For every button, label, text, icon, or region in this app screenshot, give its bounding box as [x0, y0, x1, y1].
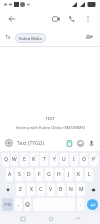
staticText: To	[5, 34, 11, 41]
button[interactable]: D	[25, 168, 33, 181]
button[interactable]: Video call	[49, 12, 63, 26]
button[interactable]: C	[37, 183, 45, 196]
button[interactable]: Recents	[17, 213, 28, 224]
staticText: L	[88, 171, 91, 178]
button[interactable]: V	[47, 183, 55, 196]
button[interactable]: Call	[65, 12, 79, 26]
button[interactable]: P	[90, 153, 98, 166]
button[interactable]: Stickers	[64, 138, 75, 149]
button[interactable]: Key	[2, 183, 14, 196]
button[interactable]: Add people	[83, 32, 95, 44]
button[interactable]: W	[11, 153, 18, 166]
staticText: X	[30, 186, 33, 193]
button[interactable]: Q	[2, 153, 9, 166]
button[interactable]: ,	[15, 198, 22, 211]
staticText: .	[80, 201, 82, 208]
staticText: Text (TYGO)	[17, 140, 44, 147]
button[interactable]: Back	[72, 213, 83, 224]
staticText: E	[23, 156, 26, 163]
button[interactable]: Y	[50, 153, 58, 166]
staticText: A	[8, 171, 12, 178]
button[interactable]: Add attachment	[3, 137, 15, 149]
staticText: W	[12, 156, 17, 163]
button[interactable]: O	[80, 153, 88, 166]
button[interactable]: Key	[87, 183, 98, 196]
button[interactable]: T	[40, 153, 48, 166]
button[interactable]: .	[77, 198, 84, 211]
staticText: N	[69, 186, 73, 193]
button[interactable]: N	[67, 183, 75, 196]
staticText: K	[77, 171, 81, 178]
staticText: 0	[95, 153, 97, 156]
button[interactable]: I	[70, 153, 78, 166]
staticText: Q	[4, 156, 8, 163]
staticText: Y	[53, 156, 56, 163]
staticText: 6	[55, 153, 57, 156]
button[interactable]: Text (TYGO)	[17, 137, 64, 149]
button[interactable]: More options	[81, 12, 95, 26]
staticText: D	[27, 171, 31, 178]
staticText: B	[59, 186, 63, 193]
staticText: F	[38, 171, 41, 178]
staticText: Kubra Bloko	[19, 36, 42, 41]
button[interactable]: S	[15, 168, 23, 181]
button[interactable]: B	[57, 183, 65, 196]
button[interactable]: R	[30, 153, 38, 166]
button[interactable]: H	[55, 168, 63, 181]
staticText: I	[73, 156, 75, 163]
staticText: Texting with Kubra Oloko (SMS/MMS)	[15, 125, 85, 130]
staticText: 2	[15, 153, 17, 156]
staticText: P	[92, 156, 96, 163]
button[interactable]: Voice input	[86, 138, 97, 149]
staticText: Z	[19, 186, 22, 193]
button[interactable]: Emoji keyboard	[24, 198, 31, 211]
button[interactable]: G	[45, 168, 53, 181]
button[interactable]: Send	[87, 199, 98, 210]
button[interactable]: ?123	[2, 198, 13, 211]
staticText: 7	[65, 153, 67, 156]
staticText: TEXT	[45, 116, 55, 121]
staticText: S	[18, 171, 21, 178]
staticText: G	[47, 171, 51, 178]
staticText: 4	[35, 153, 37, 156]
staticText: ?123	[4, 202, 12, 207]
staticText: C	[39, 186, 43, 193]
staticText: 3	[25, 153, 27, 156]
button[interactable]: X	[27, 183, 35, 196]
button[interactable]: Emoji	[75, 138, 86, 149]
button[interactable]: U	[60, 153, 68, 166]
button[interactable]: Z	[16, 183, 25, 196]
staticText: ,	[18, 201, 20, 208]
button[interactable]: Home	[45, 213, 56, 224]
button[interactable]: M	[77, 183, 85, 196]
staticText: T	[43, 156, 46, 163]
button[interactable]: L	[85, 168, 93, 181]
staticText: 8	[75, 153, 77, 156]
staticText: V	[49, 186, 53, 193]
button[interactable]: A	[6, 168, 13, 181]
button[interactable]: J	[65, 168, 73, 181]
staticText: H	[57, 171, 61, 178]
button[interactable]: Kubra Bloko	[15, 33, 46, 43]
staticText: U	[62, 156, 66, 163]
button[interactable]: E	[20, 153, 28, 166]
staticText: O	[82, 156, 86, 163]
staticText: 9	[85, 153, 87, 156]
button[interactable]: K	[75, 168, 83, 181]
staticText: 5	[45, 153, 47, 156]
button[interactable]: Back	[5, 12, 19, 26]
staticText: R	[32, 156, 36, 163]
staticText: M	[79, 186, 84, 193]
staticText: J	[68, 171, 70, 178]
button[interactable]: F	[35, 168, 43, 181]
staticText: 1	[6, 153, 8, 156]
